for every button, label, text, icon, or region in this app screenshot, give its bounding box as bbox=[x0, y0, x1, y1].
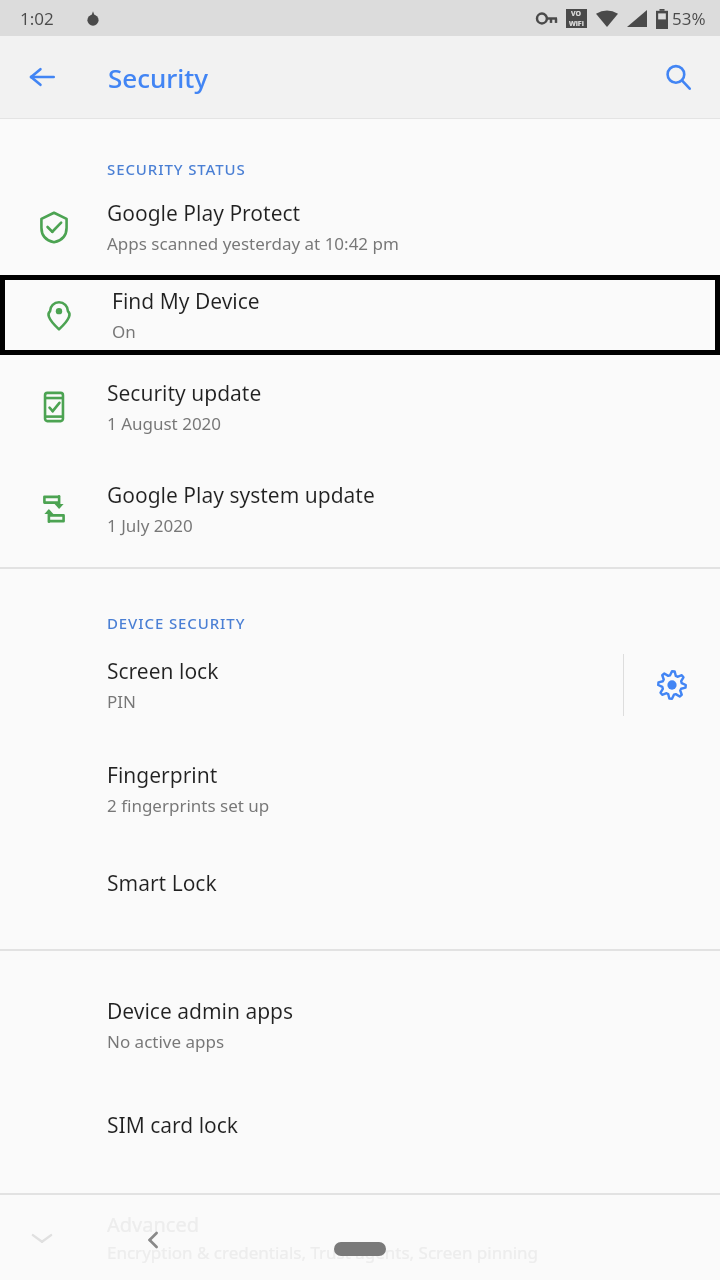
button[interactable]: Back bbox=[130, 1216, 178, 1264]
staticText: 53% bbox=[672, 7, 706, 30]
staticText: PIN bbox=[107, 690, 136, 713]
button[interactable]: Advanced bbox=[0, 1195, 720, 1280]
staticText: VO bbox=[571, 9, 582, 19]
button[interactable]: Google Play Protect bbox=[0, 179, 720, 275]
staticText: Apps scanned yesterday at 10:42 pm bbox=[107, 232, 399, 255]
staticText: SECURITY STATUS bbox=[107, 159, 246, 179]
staticText: Device admin apps bbox=[107, 997, 294, 1026]
staticText: 1 August 2020 bbox=[107, 412, 222, 435]
button[interactable]: Home bbox=[334, 1242, 386, 1256]
button[interactable]: Back bbox=[18, 53, 66, 101]
staticText: 2 fingerprints set up bbox=[107, 794, 270, 817]
staticText: Security update bbox=[107, 379, 262, 408]
staticText: SIM card lock bbox=[107, 1111, 239, 1140]
staticText: Smart Lock bbox=[107, 869, 217, 898]
button[interactable]: Google Play system update bbox=[0, 459, 720, 559]
staticText: DEVICE SECURITY bbox=[107, 613, 246, 633]
button[interactable]: Screen lock settings bbox=[624, 633, 720, 737]
button[interactable]: Smart Lock bbox=[0, 841, 720, 925]
staticText: Find My Device bbox=[112, 287, 260, 316]
staticText: Security bbox=[108, 60, 208, 95]
staticText: No active apps bbox=[107, 1030, 225, 1053]
staticText: Screen lock bbox=[107, 657, 219, 686]
staticText: Encryption & credentials, Trust agents, … bbox=[107, 1241, 539, 1264]
button[interactable]: SIM card lock bbox=[0, 1077, 720, 1173]
button[interactable]: Screen lock bbox=[0, 633, 623, 737]
staticText: Advanced bbox=[107, 1211, 199, 1238]
staticText: On bbox=[112, 320, 136, 343]
staticText: 1:02 bbox=[20, 7, 54, 30]
button[interactable]: Fingerprint bbox=[0, 737, 720, 841]
staticText: 1 July 2020 bbox=[107, 514, 193, 537]
staticText: WiFi bbox=[569, 19, 584, 28]
button[interactable]: Search bbox=[654, 53, 702, 101]
button[interactable]: Security update bbox=[0, 355, 720, 459]
staticText: Google Play Protect bbox=[107, 199, 301, 228]
button[interactable]: Device admin apps bbox=[0, 973, 720, 1077]
staticText: Google Play system update bbox=[107, 481, 375, 510]
staticText: Fingerprint bbox=[107, 761, 218, 790]
button[interactable]: Find My Device bbox=[5, 280, 715, 350]
